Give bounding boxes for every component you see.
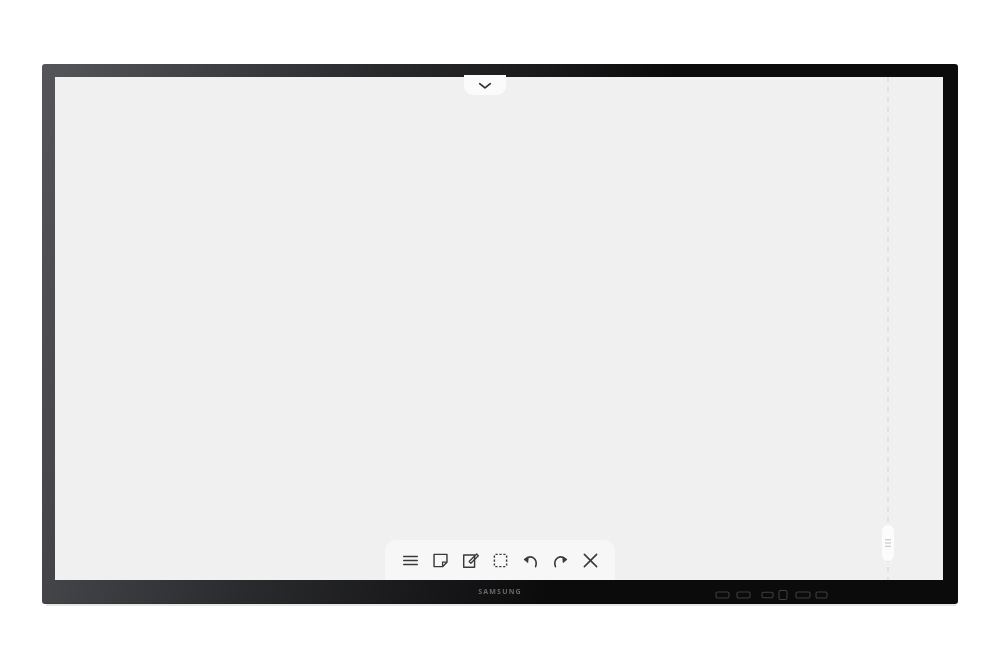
button[interactable]: Edit xyxy=(455,542,485,578)
button[interactable]: Close xyxy=(575,542,605,578)
button[interactable]: Menu xyxy=(395,542,425,578)
staticText: SAMSUNG xyxy=(478,587,522,597)
button[interactable]: Select xyxy=(485,542,515,578)
button[interactable]: Redo xyxy=(545,542,575,578)
button[interactable]: Note xyxy=(425,542,455,578)
button[interactable]: Scroll handle xyxy=(882,525,894,561)
button[interactable]: Show menu xyxy=(464,75,506,95)
button[interactable]: Undo xyxy=(515,542,545,578)
